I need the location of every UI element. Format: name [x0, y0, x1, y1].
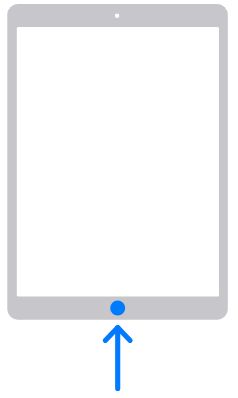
button[interactable]: Press the Home button: [0, 0, 238, 398]
